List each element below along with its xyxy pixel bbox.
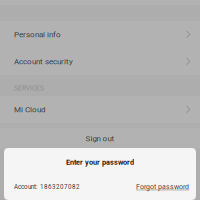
staticText: Sign out: [85, 134, 114, 143]
staticText: Enter your password: [66, 158, 134, 167]
staticText: SERVICES: [14, 84, 44, 92]
button[interactable]: Forgot password: [136, 183, 189, 191]
button[interactable]: Mi Cloud: [0, 96, 200, 123]
button[interactable]: Account security: [0, 48, 200, 75]
staticText: Forgot password: [136, 183, 189, 191]
staticText: Account security: [14, 57, 73, 66]
staticText: Personal info: [14, 30, 61, 39]
button[interactable]: Sign out: [0, 128, 200, 149]
button[interactable]: Personal info: [0, 21, 200, 48]
staticText: Account: 1863207082: [14, 183, 80, 191]
staticText: Mi Cloud: [14, 105, 46, 114]
